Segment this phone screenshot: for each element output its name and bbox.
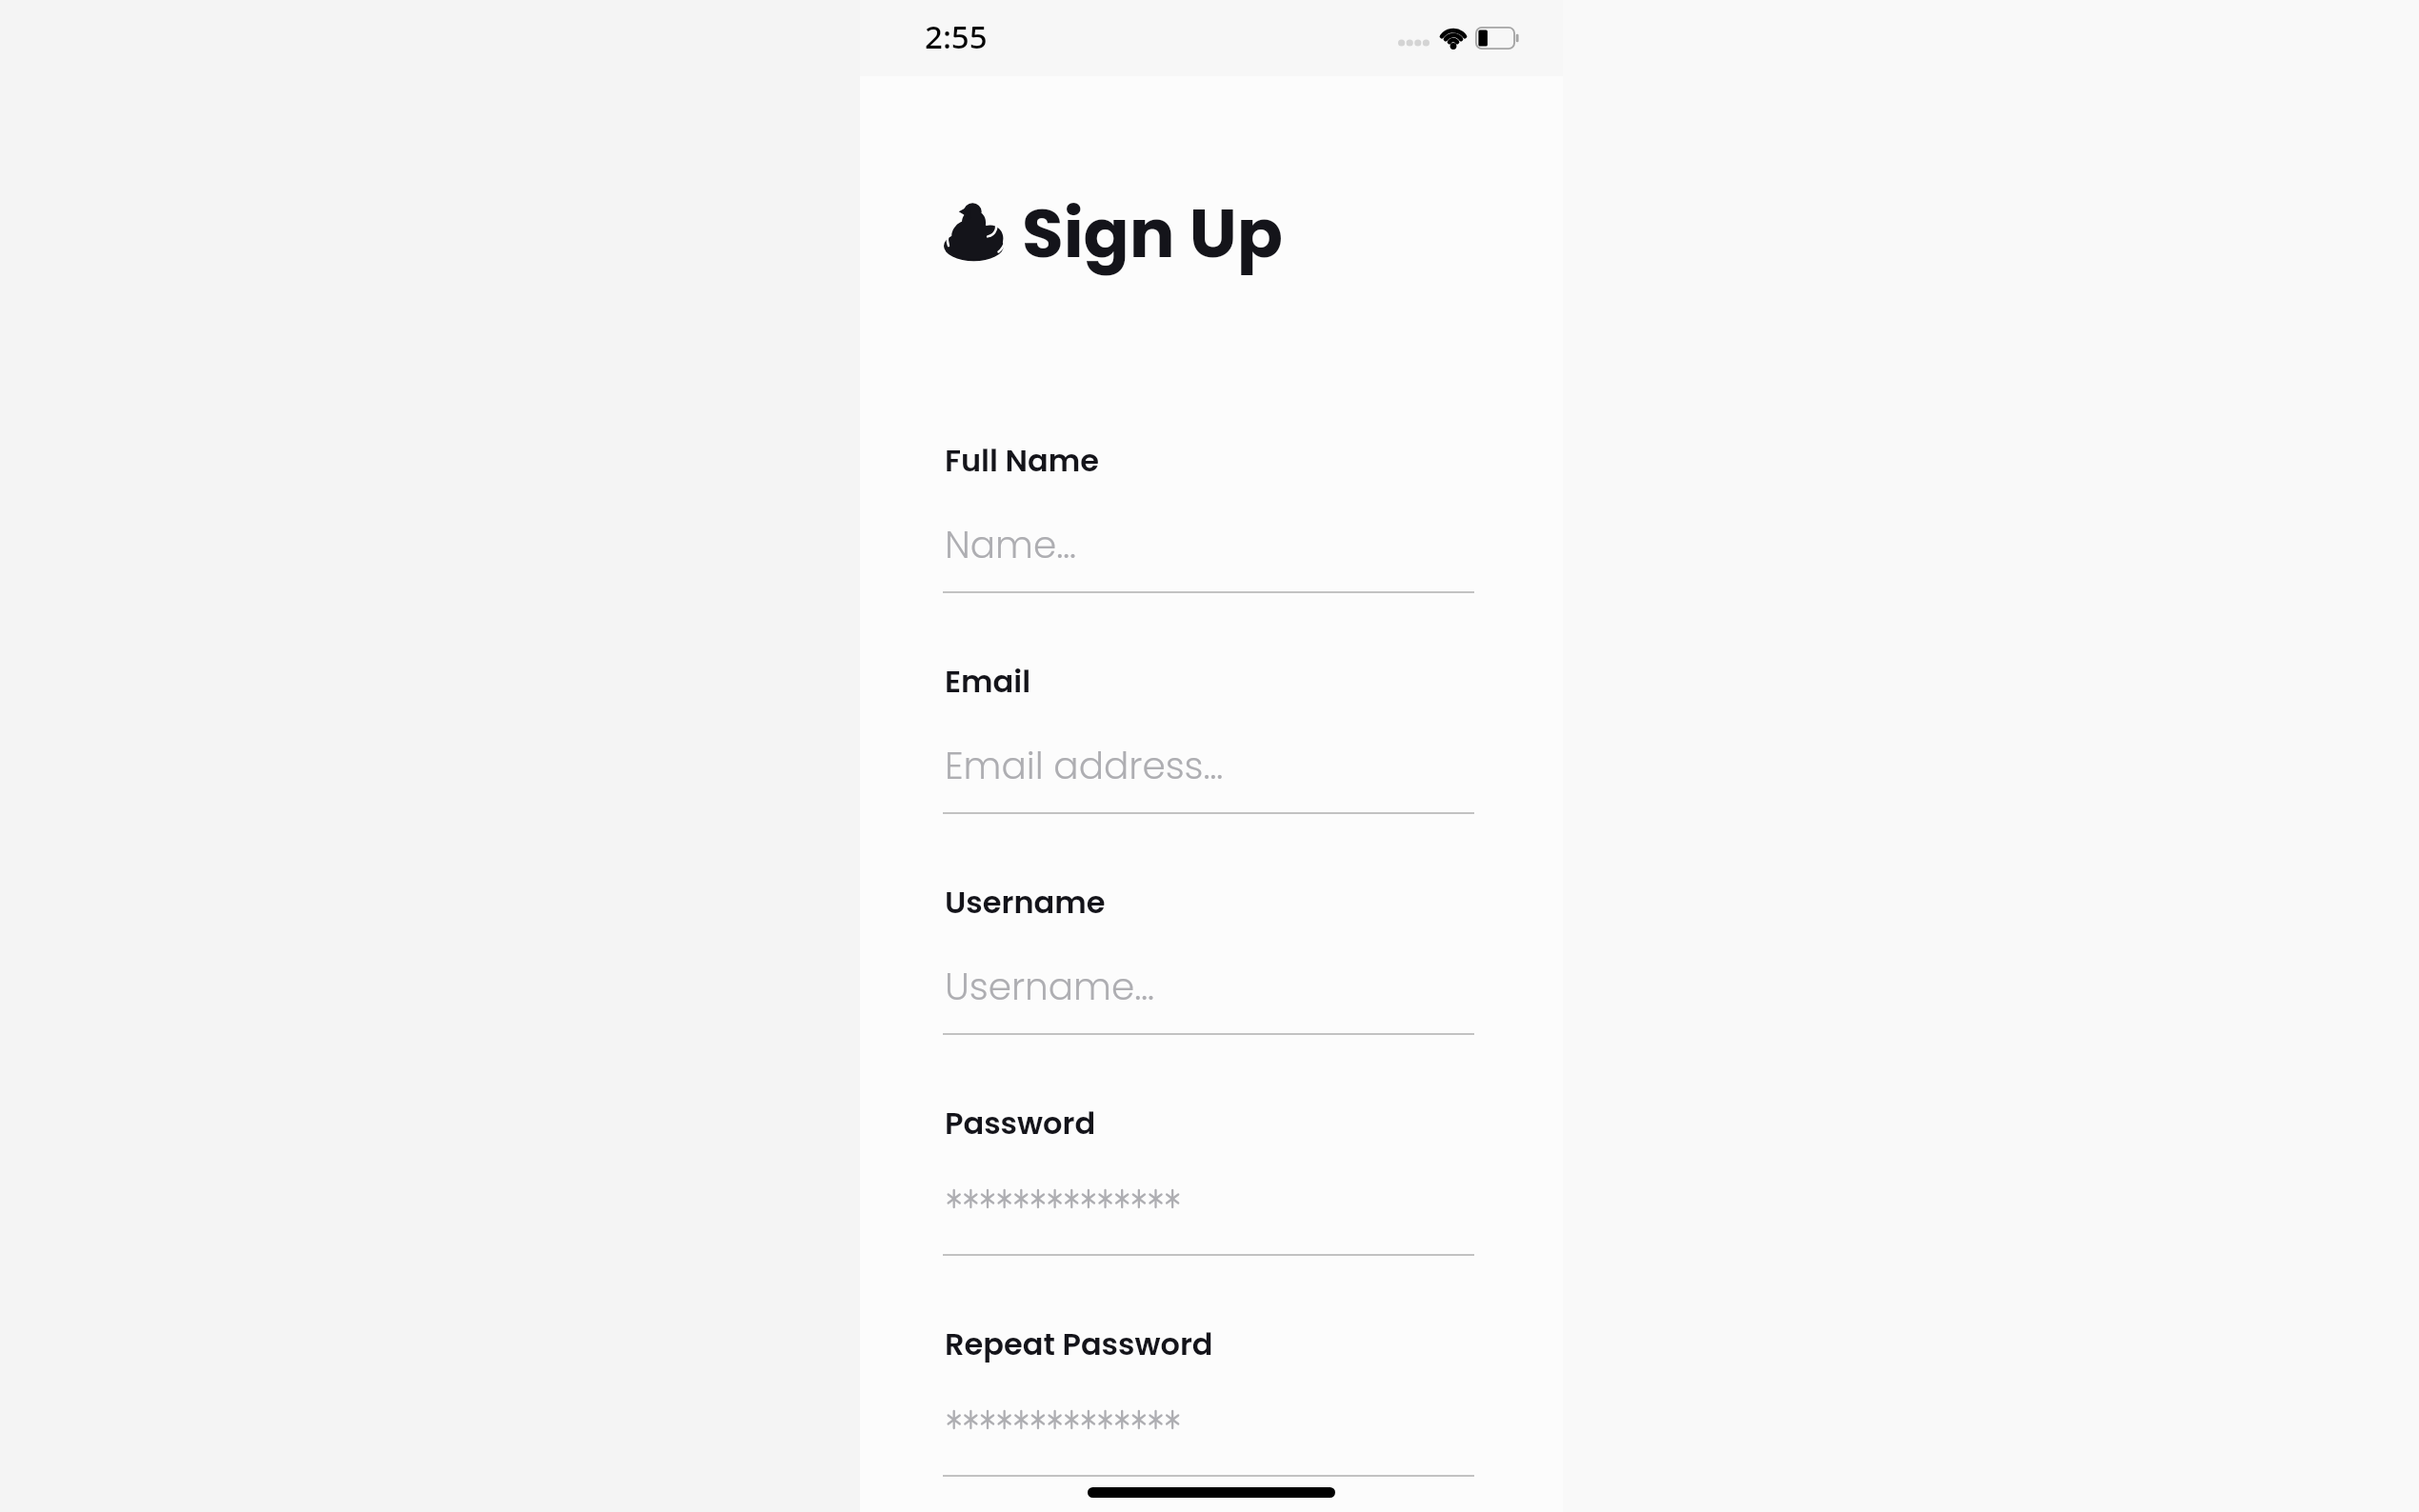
staticText: Name… [945,519,1076,571]
button[interactable]: Email [939,654,1482,826]
button[interactable]: Repeat Password [939,1317,1482,1488]
staticText: Email address… [945,740,1224,792]
staticText: Sign Up [1022,186,1283,280]
staticText: Repeat Password [945,1323,1213,1365]
button[interactable]: Username [939,875,1482,1046]
button[interactable]: Password [939,1096,1482,1267]
staticText: Email [945,660,1031,703]
other: Pile of poo logo [944,202,1004,260]
staticText: Username… [945,961,1154,1013]
staticText: Password [945,1102,1096,1144]
button[interactable]: Full Name [939,433,1482,605]
staticText: Username [945,881,1106,924]
staticText: 2:55 [925,15,988,58]
staticText: Full Name [945,439,1100,482]
